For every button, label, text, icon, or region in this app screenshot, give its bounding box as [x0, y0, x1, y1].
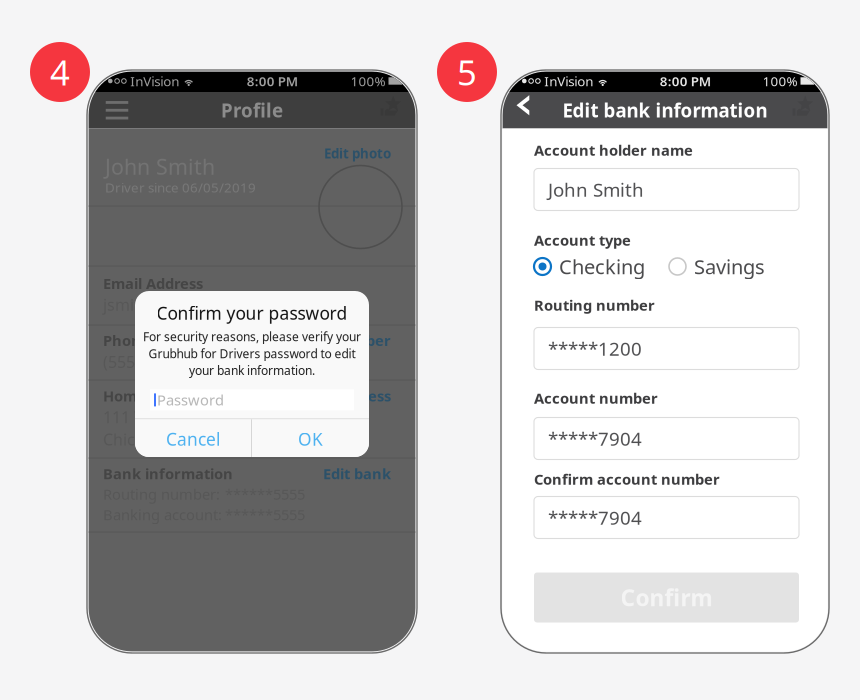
staticText: Edit photo: [324, 144, 391, 162]
staticText: InVision: [130, 72, 179, 90]
staticText: 100%: [350, 72, 385, 90]
button[interactable]: Edit number: [301, 331, 391, 350]
staticText: Phone: [103, 331, 150, 350]
staticText: Edit number: [301, 331, 391, 350]
staticText: John Smith: [548, 177, 644, 202]
staticText: InVision: [544, 72, 593, 90]
staticText: your bank information.: [189, 362, 315, 378]
button[interactable]: Edit address: [304, 386, 391, 405]
staticText: 8:00 PM: [247, 72, 298, 90]
button[interactable]: Edit photo: [324, 144, 391, 162]
staticText: Password: [157, 390, 224, 410]
button[interactable]: Checking: [534, 253, 645, 280]
staticText: Driver since 06/05/2019: [105, 178, 256, 196]
button[interactable]: Cancel: [135, 419, 251, 458]
staticText: Checking: [559, 253, 645, 280]
staticText: OK: [298, 427, 323, 450]
staticText: Edit address: [304, 386, 391, 405]
button[interactable]: Confirm: [534, 572, 799, 622]
staticText: jsmith@gmail.com: [103, 294, 243, 315]
staticText: Edit bank information: [562, 98, 767, 123]
staticText: 111 W Wacker Dr: [103, 406, 233, 428]
staticText: Account number: [534, 388, 658, 408]
staticText: 100%: [762, 72, 797, 90]
staticText: 5: [457, 49, 477, 95]
button[interactable]: Edit bank: [323, 464, 391, 483]
staticText: (555) 555-5555: [103, 351, 212, 372]
staticText: 4: [50, 49, 70, 95]
button[interactable]: OK: [252, 419, 369, 458]
button[interactable]: Savings: [669, 253, 765, 280]
staticText: Bank information: [103, 464, 233, 483]
staticText: *****7904: [548, 426, 642, 451]
staticText: Confirm: [620, 582, 712, 612]
staticText: Chicago, IL 60601: [103, 429, 234, 450]
staticText: Grubhub for Drivers password to edit: [148, 345, 355, 361]
staticText: Email Address: [103, 273, 203, 293]
staticText: Edit bank: [323, 464, 391, 483]
button[interactable]: Menu: [87, 92, 139, 128]
staticText: 8:00 PM: [660, 72, 711, 90]
button[interactable]: Favorites: [785, 92, 829, 128]
staticText: Routing number: [534, 295, 655, 315]
staticText: Account holder name: [534, 140, 693, 160]
staticText: Confirm your password: [156, 302, 347, 325]
button[interactable]: Back: [501, 92, 545, 128]
button[interactable]: Favorites: [373, 92, 417, 128]
staticText: Cancel: [166, 427, 220, 450]
staticText: Confirm account number: [534, 469, 720, 489]
staticText: Savings: [694, 253, 765, 280]
staticText: Profile: [221, 98, 283, 123]
staticText: John Smith: [105, 152, 215, 181]
staticText: Account type: [534, 230, 631, 250]
staticText: *****7904: [548, 505, 642, 530]
staticText: *****1200: [548, 336, 642, 361]
staticText: For security reasons, please verify your: [143, 329, 361, 344]
staticText: Home address: [103, 386, 206, 405]
